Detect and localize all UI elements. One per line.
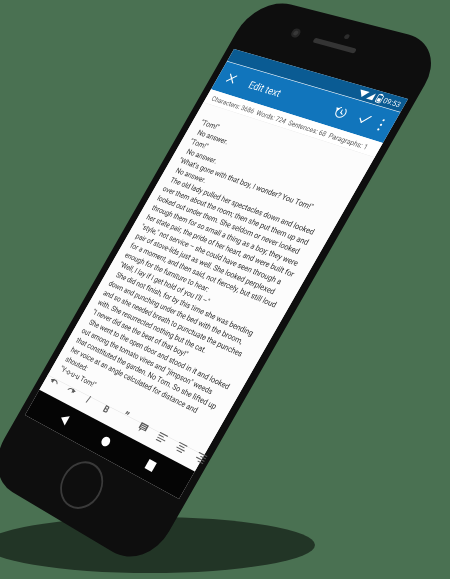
button[interactable]: Phone showing Edit text screen — [0, 0, 450, 579]
